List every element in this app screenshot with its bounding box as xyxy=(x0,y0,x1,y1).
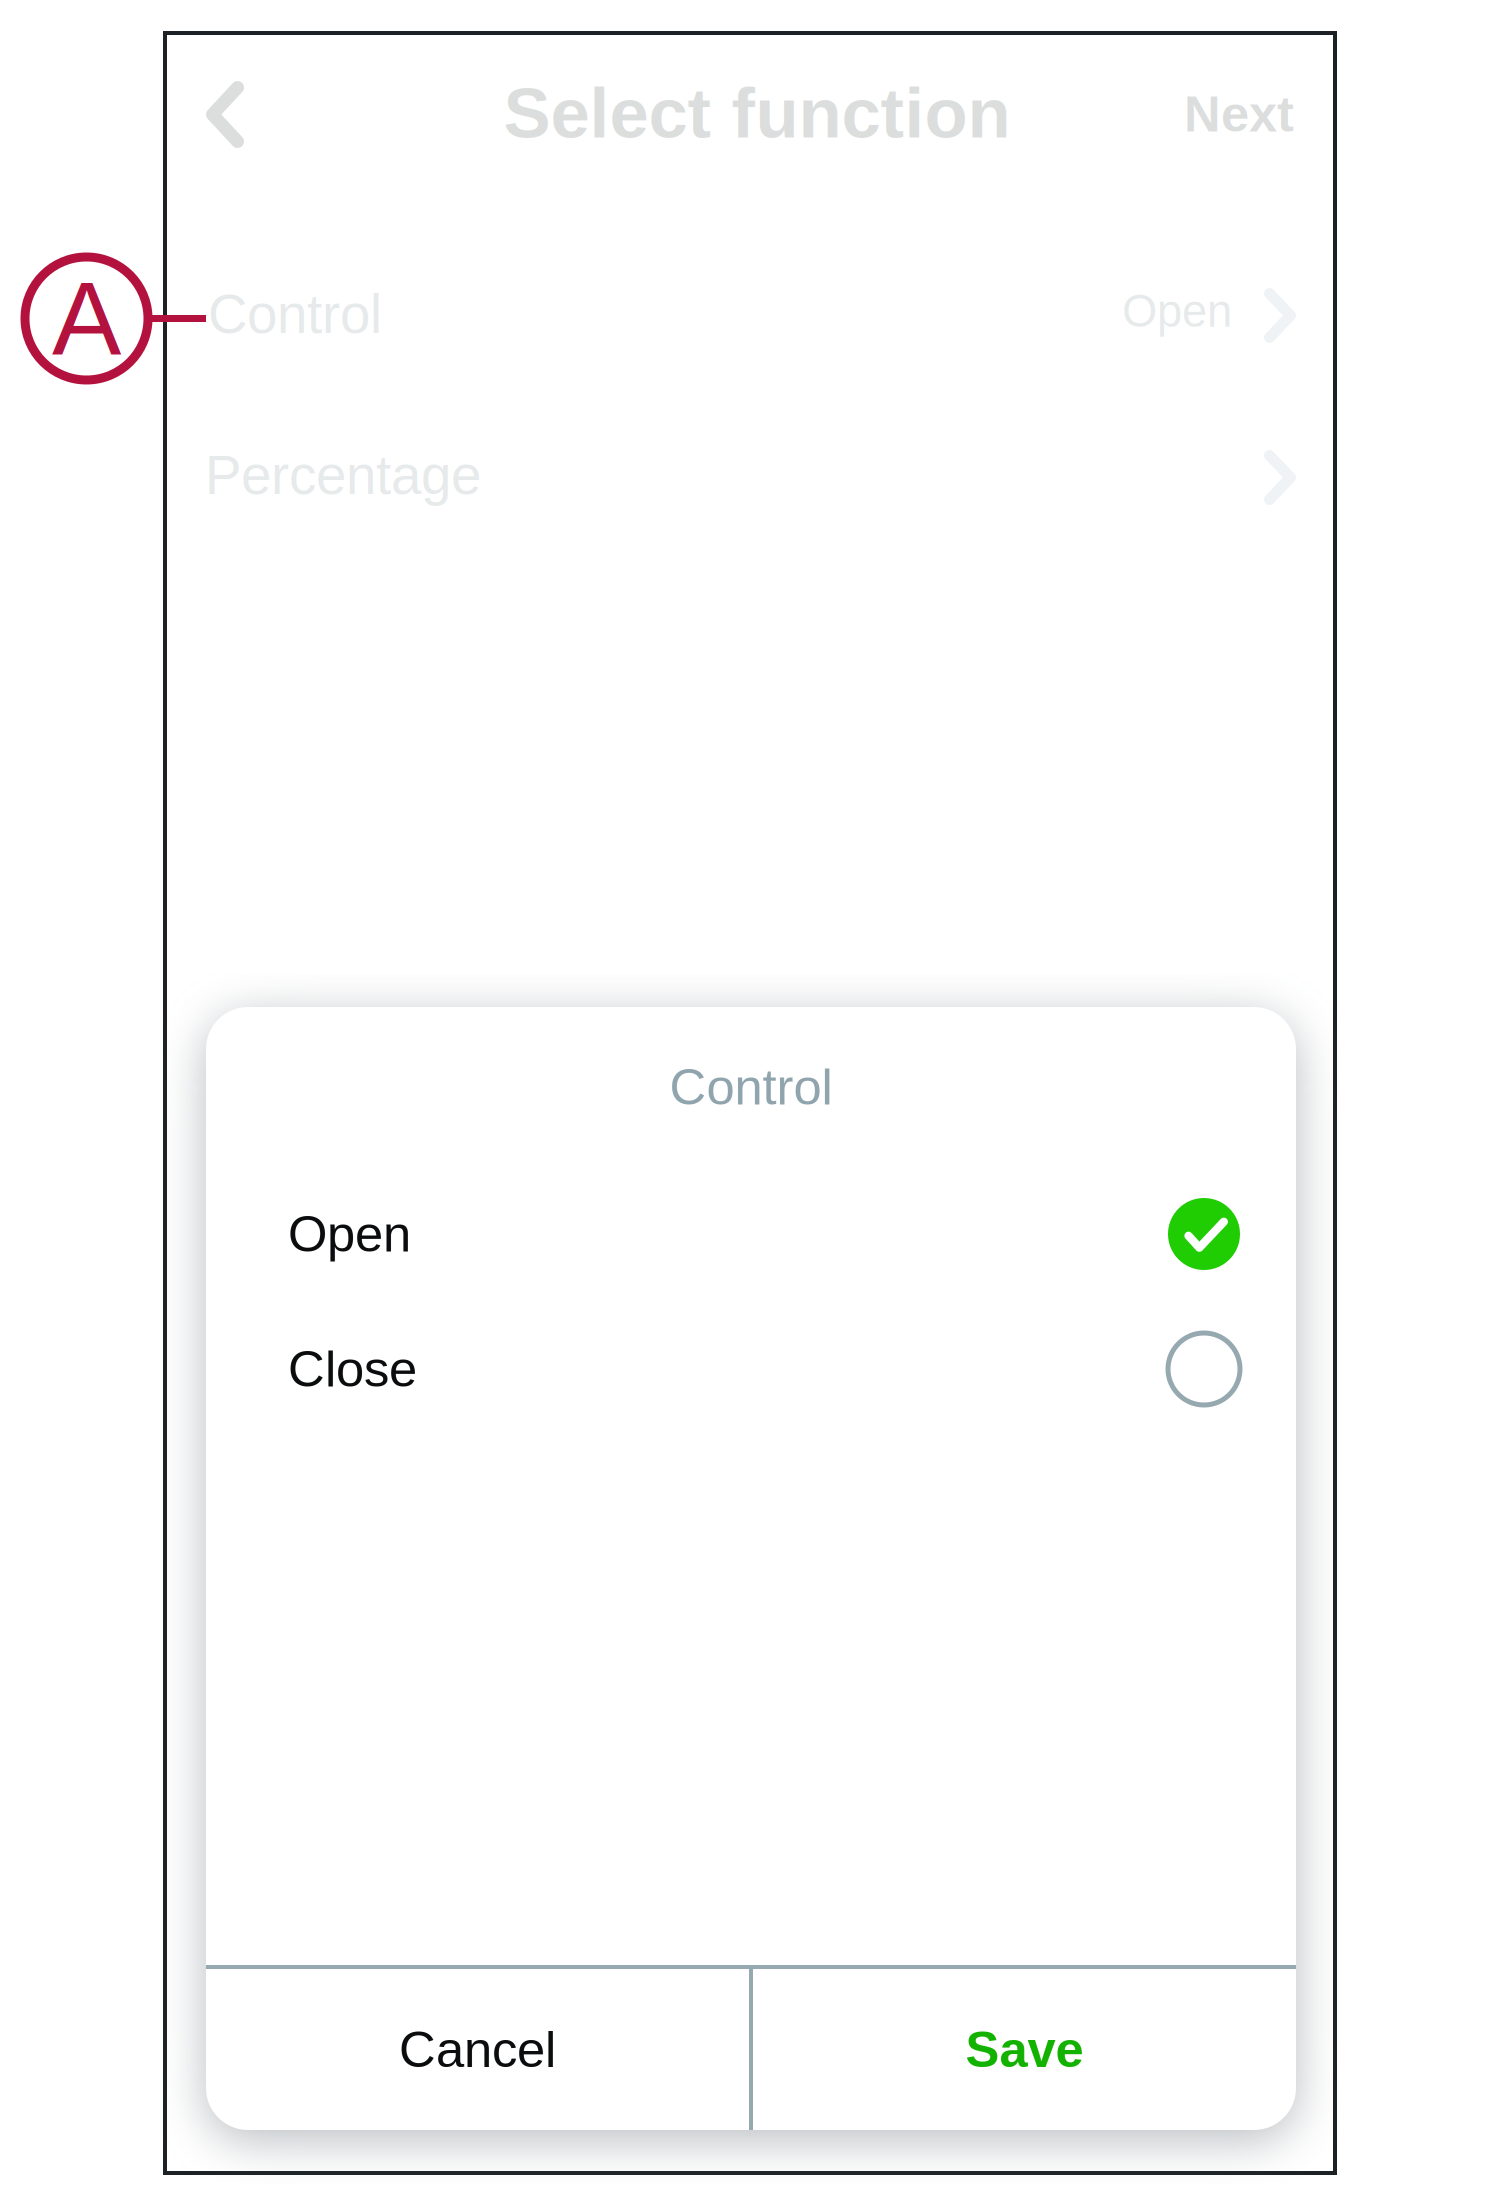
button[interactable]: Back xyxy=(165,48,295,178)
button[interactable]: Cancel xyxy=(206,1969,749,2130)
staticText: Next xyxy=(1184,86,1294,142)
staticText: A xyxy=(52,260,121,377)
staticText: Save xyxy=(965,2021,1083,2078)
staticText: Select function xyxy=(503,73,1010,152)
button[interactable]: Percentage xyxy=(165,395,1335,555)
button[interactable]: Control xyxy=(165,233,1335,393)
staticText: Control xyxy=(208,283,382,345)
button[interactable]: Open xyxy=(206,1171,1296,1303)
button[interactable]: Close xyxy=(206,1306,1296,1438)
button[interactable]: Next xyxy=(1139,58,1339,170)
staticText: Close xyxy=(288,1341,417,1397)
staticText: Open xyxy=(288,1206,411,1262)
staticText: Open xyxy=(1122,286,1232,336)
button[interactable]: Save xyxy=(753,1969,1296,2130)
staticText: Cancel xyxy=(399,2021,556,2078)
staticText: Control xyxy=(669,1059,832,1115)
staticText: Percentage xyxy=(205,444,481,506)
